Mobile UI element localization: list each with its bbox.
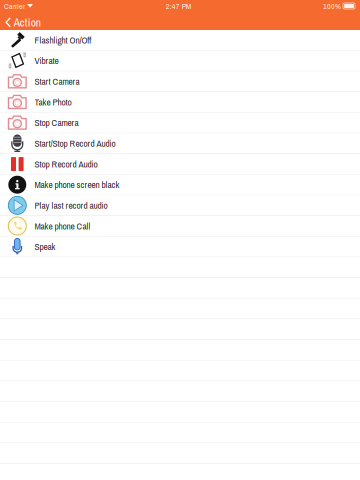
button[interactable]: Stop Camera: [0, 113, 360, 133]
staticText: Stop Record Audio: [35, 158, 98, 170]
staticText: Take Photo: [35, 96, 72, 108]
staticText: Start Camera: [35, 75, 80, 88]
staticText: Make phone screen black: [35, 178, 120, 191]
button[interactable]: Make phone Call: [0, 216, 360, 237]
staticText: Carrier: [4, 1, 25, 11]
staticText: Action: [14, 15, 41, 30]
staticText: Stop Camera: [35, 116, 79, 129]
button[interactable]: Stop Record Audio: [0, 154, 360, 175]
staticText: Play last record audio: [35, 199, 108, 212]
button[interactable]: Make phone screen black: [0, 175, 360, 195]
staticText: 2:47 PM: [166, 1, 191, 11]
button[interactable]: Start Camera: [0, 71, 360, 92]
button[interactable]: Play last record audio: [0, 195, 360, 216]
button[interactable]: Vibrate: [0, 51, 360, 71]
button[interactable]: Start/Stop Record Audio: [0, 133, 360, 154]
staticText: Flashlight On/Off: [35, 34, 92, 46]
staticText: Make phone Call: [35, 220, 91, 232]
staticText: Vibrate: [35, 54, 59, 67]
staticText: Start/Stop Record Audio: [35, 137, 116, 150]
button[interactable]: Speak: [0, 237, 360, 257]
staticText: Speak: [35, 240, 56, 253]
button[interactable]: Take Photo: [0, 92, 360, 113]
button[interactable]: Flashlight On/Off: [0, 30, 360, 51]
staticText: 100%: [323, 1, 341, 11]
button[interactable]: Back to Action: [0, 11, 47, 31]
